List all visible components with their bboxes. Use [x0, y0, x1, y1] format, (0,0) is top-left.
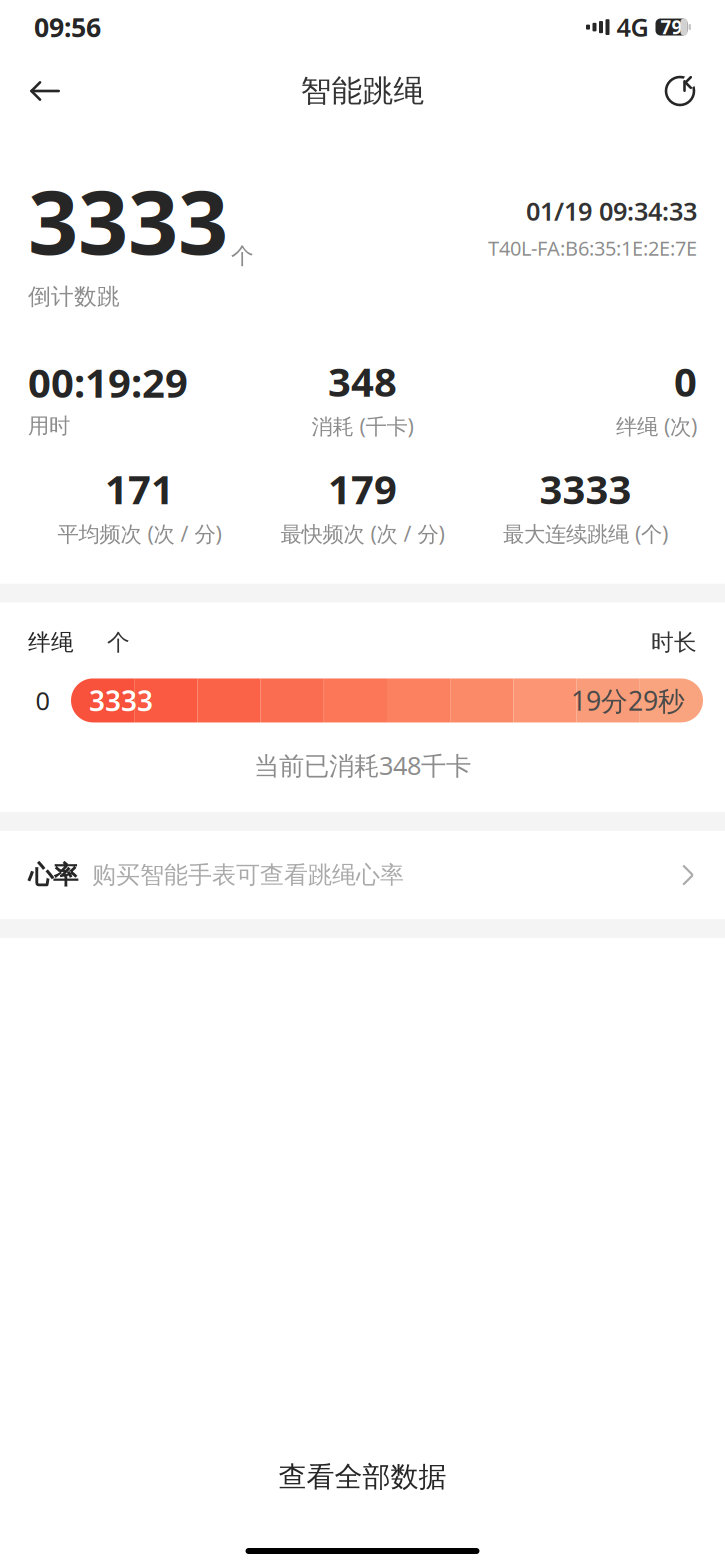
staticText: 01/19 09:34:33 — [526, 194, 697, 228]
staticText: 绊绳 (次) — [616, 412, 697, 440]
staticText: 倒计数跳 — [28, 283, 120, 311]
staticText: T40L-FA:B6:35:1E:2E:7E — [488, 235, 697, 261]
staticText: 3333 — [539, 462, 631, 515]
button[interactable]: 心率 — [0, 831, 725, 919]
staticText: 查看全部数据 — [278, 1460, 446, 1494]
staticText: 最大连续跳绳 (个) — [503, 519, 668, 548]
staticText: 当前已消耗348千卡 — [254, 748, 471, 782]
button[interactable]: 刷新 — [657, 68, 703, 114]
staticText: 09:56 — [34, 9, 101, 45]
staticText: 4G — [616, 10, 648, 44]
staticText: 171 — [105, 462, 174, 515]
staticText: 时长 — [651, 629, 697, 656]
staticText: 平均频次 (次 / 分) — [57, 519, 221, 548]
staticText: 179 — [328, 462, 397, 515]
staticText: 消耗 (千卡) — [311, 412, 413, 440]
staticText: 0 — [35, 684, 49, 717]
staticText: 79 — [660, 15, 682, 39]
staticText: 智能跳绳 — [300, 72, 424, 110]
staticText: 00:19:29 — [28, 356, 188, 409]
staticText: 心率 — [28, 859, 78, 891]
staticText: 3333 — [89, 682, 153, 719]
staticText: 个 — [231, 242, 254, 270]
staticText: 3333 — [28, 162, 228, 279]
staticText: 用时 — [28, 413, 70, 439]
staticText: 购买智能手表可查看跳绳心率 — [92, 860, 404, 890]
staticText: 最快频次 (次 / 分) — [280, 519, 444, 548]
staticText: 348 — [328, 355, 397, 408]
staticText: 19分29秒 — [571, 683, 685, 718]
staticText: 绊绳 — [28, 629, 74, 656]
staticText: 个 — [107, 629, 130, 656]
button[interactable]: 返回 — [22, 68, 68, 114]
staticText: 0 — [674, 355, 697, 408]
button[interactable]: 查看全部数据 — [0, 1446, 725, 1508]
